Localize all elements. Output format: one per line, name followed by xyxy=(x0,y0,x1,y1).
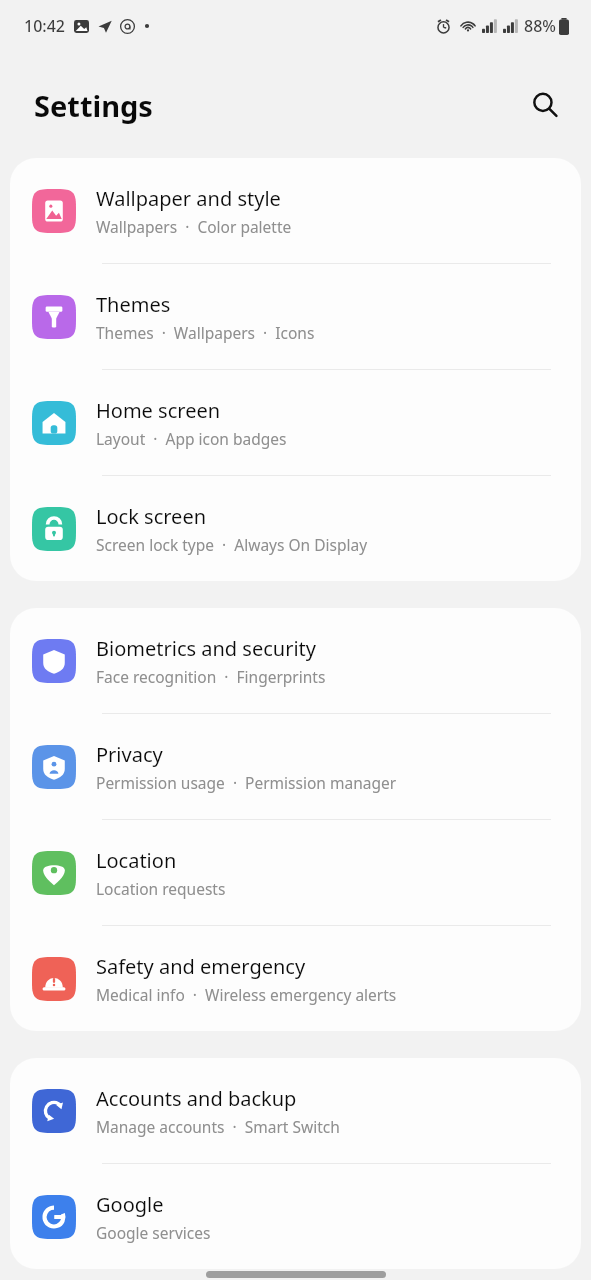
staticText: Manage accounts · Smart Switch xyxy=(96,1116,340,1137)
staticText: Privacy xyxy=(96,741,163,768)
staticText: Biometrics and security xyxy=(96,635,316,662)
staticText: Settings xyxy=(34,86,153,125)
staticText: Permission usage · Permission manager xyxy=(96,772,397,793)
staticText: Home screen xyxy=(96,397,221,424)
button[interactable]: Wallpaper and style xyxy=(10,158,581,264)
button[interactable]: Home screen xyxy=(10,370,581,476)
button[interactable]: Location xyxy=(10,820,581,926)
button[interactable]: Safety and emergency xyxy=(10,926,581,1031)
button[interactable]: Themes xyxy=(10,264,581,370)
button[interactable]: Accounts and backup xyxy=(10,1058,581,1164)
button[interactable]: Biometrics and security xyxy=(10,608,581,714)
button[interactable]: Google xyxy=(10,1164,581,1269)
staticText: Google services xyxy=(96,1222,211,1243)
staticText: Lock screen xyxy=(96,503,207,530)
staticText: Accounts and backup xyxy=(96,1085,297,1112)
staticText: 88% xyxy=(524,15,556,37)
staticText: Safety and emergency xyxy=(96,953,306,980)
button[interactable]: Lock screen xyxy=(10,476,581,581)
staticText: Themes xyxy=(96,291,171,318)
staticText: Medical info · Wireless emergency alerts xyxy=(96,984,397,1005)
button[interactable]: Privacy xyxy=(10,714,581,820)
button[interactable]: Search xyxy=(521,81,569,129)
staticText: Location xyxy=(96,847,177,874)
staticText: Location requests xyxy=(96,878,226,899)
staticText: Google xyxy=(96,1191,164,1218)
staticText: Themes · Wallpapers · Icons xyxy=(96,322,315,343)
staticText: Layout · App icon badges xyxy=(96,428,287,449)
staticText: Wallpaper and style xyxy=(96,185,281,212)
staticText: Face recognition · Fingerprints xyxy=(96,666,326,687)
staticText: Screen lock type · Always On Display xyxy=(96,534,368,555)
staticText: 10:42 xyxy=(24,15,65,37)
staticText: Wallpapers · Color palette xyxy=(96,216,292,237)
